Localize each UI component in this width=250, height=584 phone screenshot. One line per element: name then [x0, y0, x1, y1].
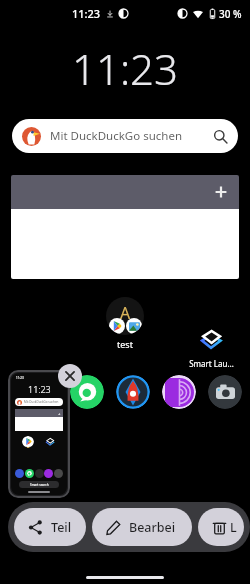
button[interactable]: Bearbeiten: [92, 508, 192, 546]
staticText: Mit DuckDuckGo suchen: [24, 400, 59, 404]
button[interactable]: Tor Browser: [162, 375, 196, 409]
button[interactable]: Camera: [208, 375, 242, 409]
staticText: A: [120, 302, 131, 324]
staticText: A: [23, 441, 34, 448]
button[interactable]: Lös: [198, 508, 244, 546]
button[interactable]: Mit DuckDuckGo suchen: [12, 119, 238, 153]
button[interactable]: Smart Lau…: [184, 325, 238, 369]
staticText: Smart search: [30, 483, 49, 487]
other: Add: [213, 184, 229, 200]
staticText: Bearbeiten: [129, 519, 178, 536]
staticText: 11:23: [0, 40, 250, 97]
button[interactable]: Settings: [116, 375, 150, 409]
button[interactable]: Teilen: [14, 508, 86, 546]
staticText: 11:23: [16, 376, 24, 380]
staticText: 11:23: [28, 383, 51, 395]
staticText: +: [58, 411, 61, 416]
button[interactable]: Add: [11, 175, 239, 279]
staticText: 11:23: [72, 6, 101, 21]
button[interactable]: Close: [58, 364, 82, 388]
staticText: Smart Lau…: [189, 358, 234, 369]
staticText: 30 %: [219, 7, 242, 21]
button[interactable]: WhatsApp: [70, 375, 104, 409]
staticText: test: [117, 338, 133, 350]
staticText: Mit DuckDuckGo suchen: [50, 128, 183, 144]
button[interactable]: 11:23: [11, 373, 67, 495]
staticText: Teilen: [51, 519, 72, 536]
button[interactable]: A: [106, 297, 144, 350]
